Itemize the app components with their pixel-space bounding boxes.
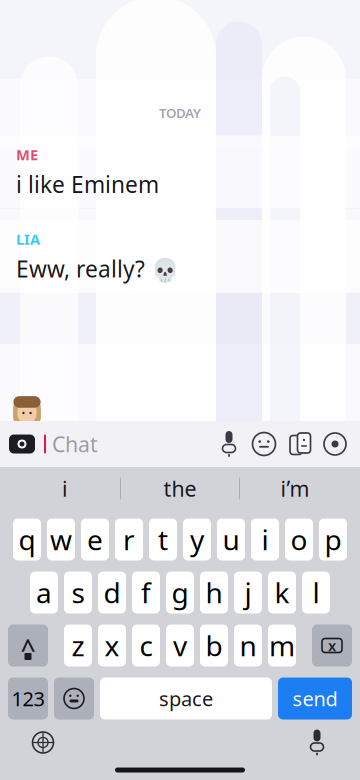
button[interactable]: j	[234, 571, 262, 613]
button[interactable]: Stickers	[246, 422, 282, 466]
staticText: Chat	[52, 430, 98, 458]
staticText: f	[141, 574, 151, 611]
button[interactable]: i	[251, 518, 279, 560]
button[interactable]: n	[234, 624, 262, 666]
button[interactable]: Location	[318, 422, 352, 466]
staticText: c	[139, 627, 152, 664]
button[interactable]: b	[200, 624, 228, 666]
button[interactable]: the	[121, 466, 239, 510]
button[interactable]: f	[132, 571, 160, 613]
staticText: ^	[20, 631, 35, 666]
staticText: z	[71, 627, 84, 664]
staticText: l	[312, 574, 319, 611]
button[interactable]: lia profile	[40, 40, 94, 92]
button[interactable]: Chat	[44, 422, 212, 466]
staticText: r	[123, 521, 135, 558]
staticText: p	[324, 521, 341, 558]
button[interactable]: Shift	[8, 624, 48, 666]
staticText: y	[190, 521, 204, 558]
button[interactable]: q	[13, 518, 41, 560]
staticText: k	[274, 574, 289, 611]
button[interactable]: l	[302, 571, 330, 613]
button[interactable]: m	[268, 624, 296, 666]
button[interactable]: Delete	[312, 624, 352, 666]
button[interactable]: t	[149, 518, 177, 560]
staticText: i	[261, 521, 268, 558]
staticText: Eww, really? 💀	[16, 254, 179, 284]
staticText: v	[173, 627, 187, 664]
staticText: i	[62, 474, 68, 503]
button[interactable]: Bitmoji	[282, 422, 318, 466]
button[interactable]: Dictation	[300, 725, 334, 759]
button[interactable]: i	[10, 466, 120, 510]
button[interactable]: g	[166, 571, 194, 613]
staticText: i’m	[280, 474, 309, 503]
staticText: ME	[16, 145, 38, 164]
staticText: q	[18, 521, 35, 558]
staticText: the	[163, 474, 196, 503]
button[interactable]: o	[285, 518, 313, 560]
staticText: x	[328, 636, 336, 655]
button[interactable]: s	[64, 571, 92, 613]
button[interactable]: Change keyboard	[26, 725, 60, 759]
staticText: n	[239, 627, 256, 664]
staticText: j	[244, 574, 251, 611]
button[interactable]: v	[166, 624, 194, 666]
button[interactable]: Back	[0, 40, 40, 92]
button[interactable]: c	[132, 624, 160, 666]
button[interactable]: y	[183, 518, 211, 560]
button[interactable]: space	[100, 677, 272, 719]
staticText: u	[222, 521, 239, 558]
button[interactable]: i’m	[240, 466, 350, 510]
button[interactable]: e	[81, 518, 109, 560]
staticText: send	[292, 685, 337, 712]
button[interactable]: p	[319, 518, 347, 560]
staticText: 123	[11, 685, 44, 712]
button[interactable]: Voice message	[212, 422, 246, 466]
staticText: d	[103, 574, 120, 611]
button[interactable]: x	[98, 624, 126, 666]
button[interactable]: k	[268, 571, 296, 613]
staticText: h	[205, 574, 222, 611]
staticText: g	[171, 574, 188, 611]
staticText: b	[205, 627, 222, 664]
button[interactable]: h	[200, 571, 228, 613]
button[interactable]: w	[47, 518, 75, 560]
staticText: s	[71, 574, 84, 611]
button[interactable]: d	[98, 571, 126, 613]
staticText: m	[269, 627, 295, 664]
staticText: w	[50, 521, 72, 558]
button[interactable]: r	[115, 518, 143, 560]
button[interactable]: u	[217, 518, 245, 560]
staticText: x	[104, 627, 119, 664]
staticText: i like Eminem	[16, 169, 159, 199]
button[interactable]: Emoji keyboard	[54, 677, 94, 719]
staticText: space	[159, 685, 213, 712]
staticText: LIA	[16, 229, 40, 249]
staticText: e	[87, 521, 103, 558]
button[interactable]: send	[278, 677, 352, 719]
staticText: Customise my personality!	[116, 47, 211, 117]
staticText: a	[36, 574, 52, 611]
button[interactable]: 123	[8, 677, 48, 719]
button[interactable]: Customise my personality!	[100, 47, 227, 117]
button[interactable]: z	[64, 624, 92, 666]
button[interactable]: Camera	[0, 422, 44, 466]
button[interactable]: a	[30, 571, 58, 613]
staticText: TODAY	[159, 104, 201, 122]
staticText: o	[290, 521, 307, 558]
staticText: t	[158, 521, 168, 558]
